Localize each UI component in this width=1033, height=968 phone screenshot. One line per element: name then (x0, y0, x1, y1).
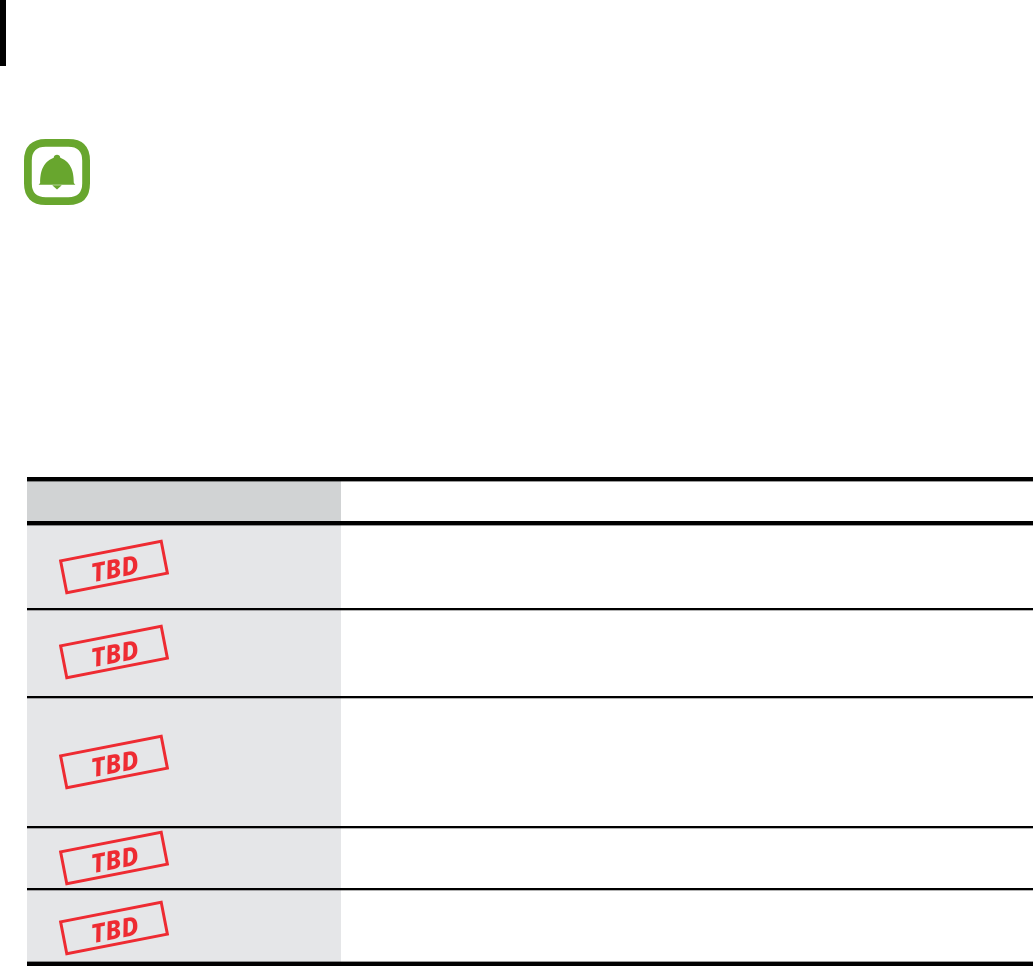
button[interactable]: TBD (53, 831, 175, 885)
button[interactable]: TBD (53, 540, 175, 594)
button[interactable]: Notifications (24, 139, 90, 205)
button[interactable]: TBD (53, 625, 175, 679)
button[interactable]: TBD (53, 735, 175, 789)
staticText: TBD (87, 545, 142, 589)
staticText: TBD (87, 836, 142, 880)
staticText: TBD (87, 740, 142, 784)
button[interactable]: TBD (53, 901, 175, 955)
staticText: TBD (87, 906, 142, 950)
staticText: TBD (87, 630, 142, 674)
